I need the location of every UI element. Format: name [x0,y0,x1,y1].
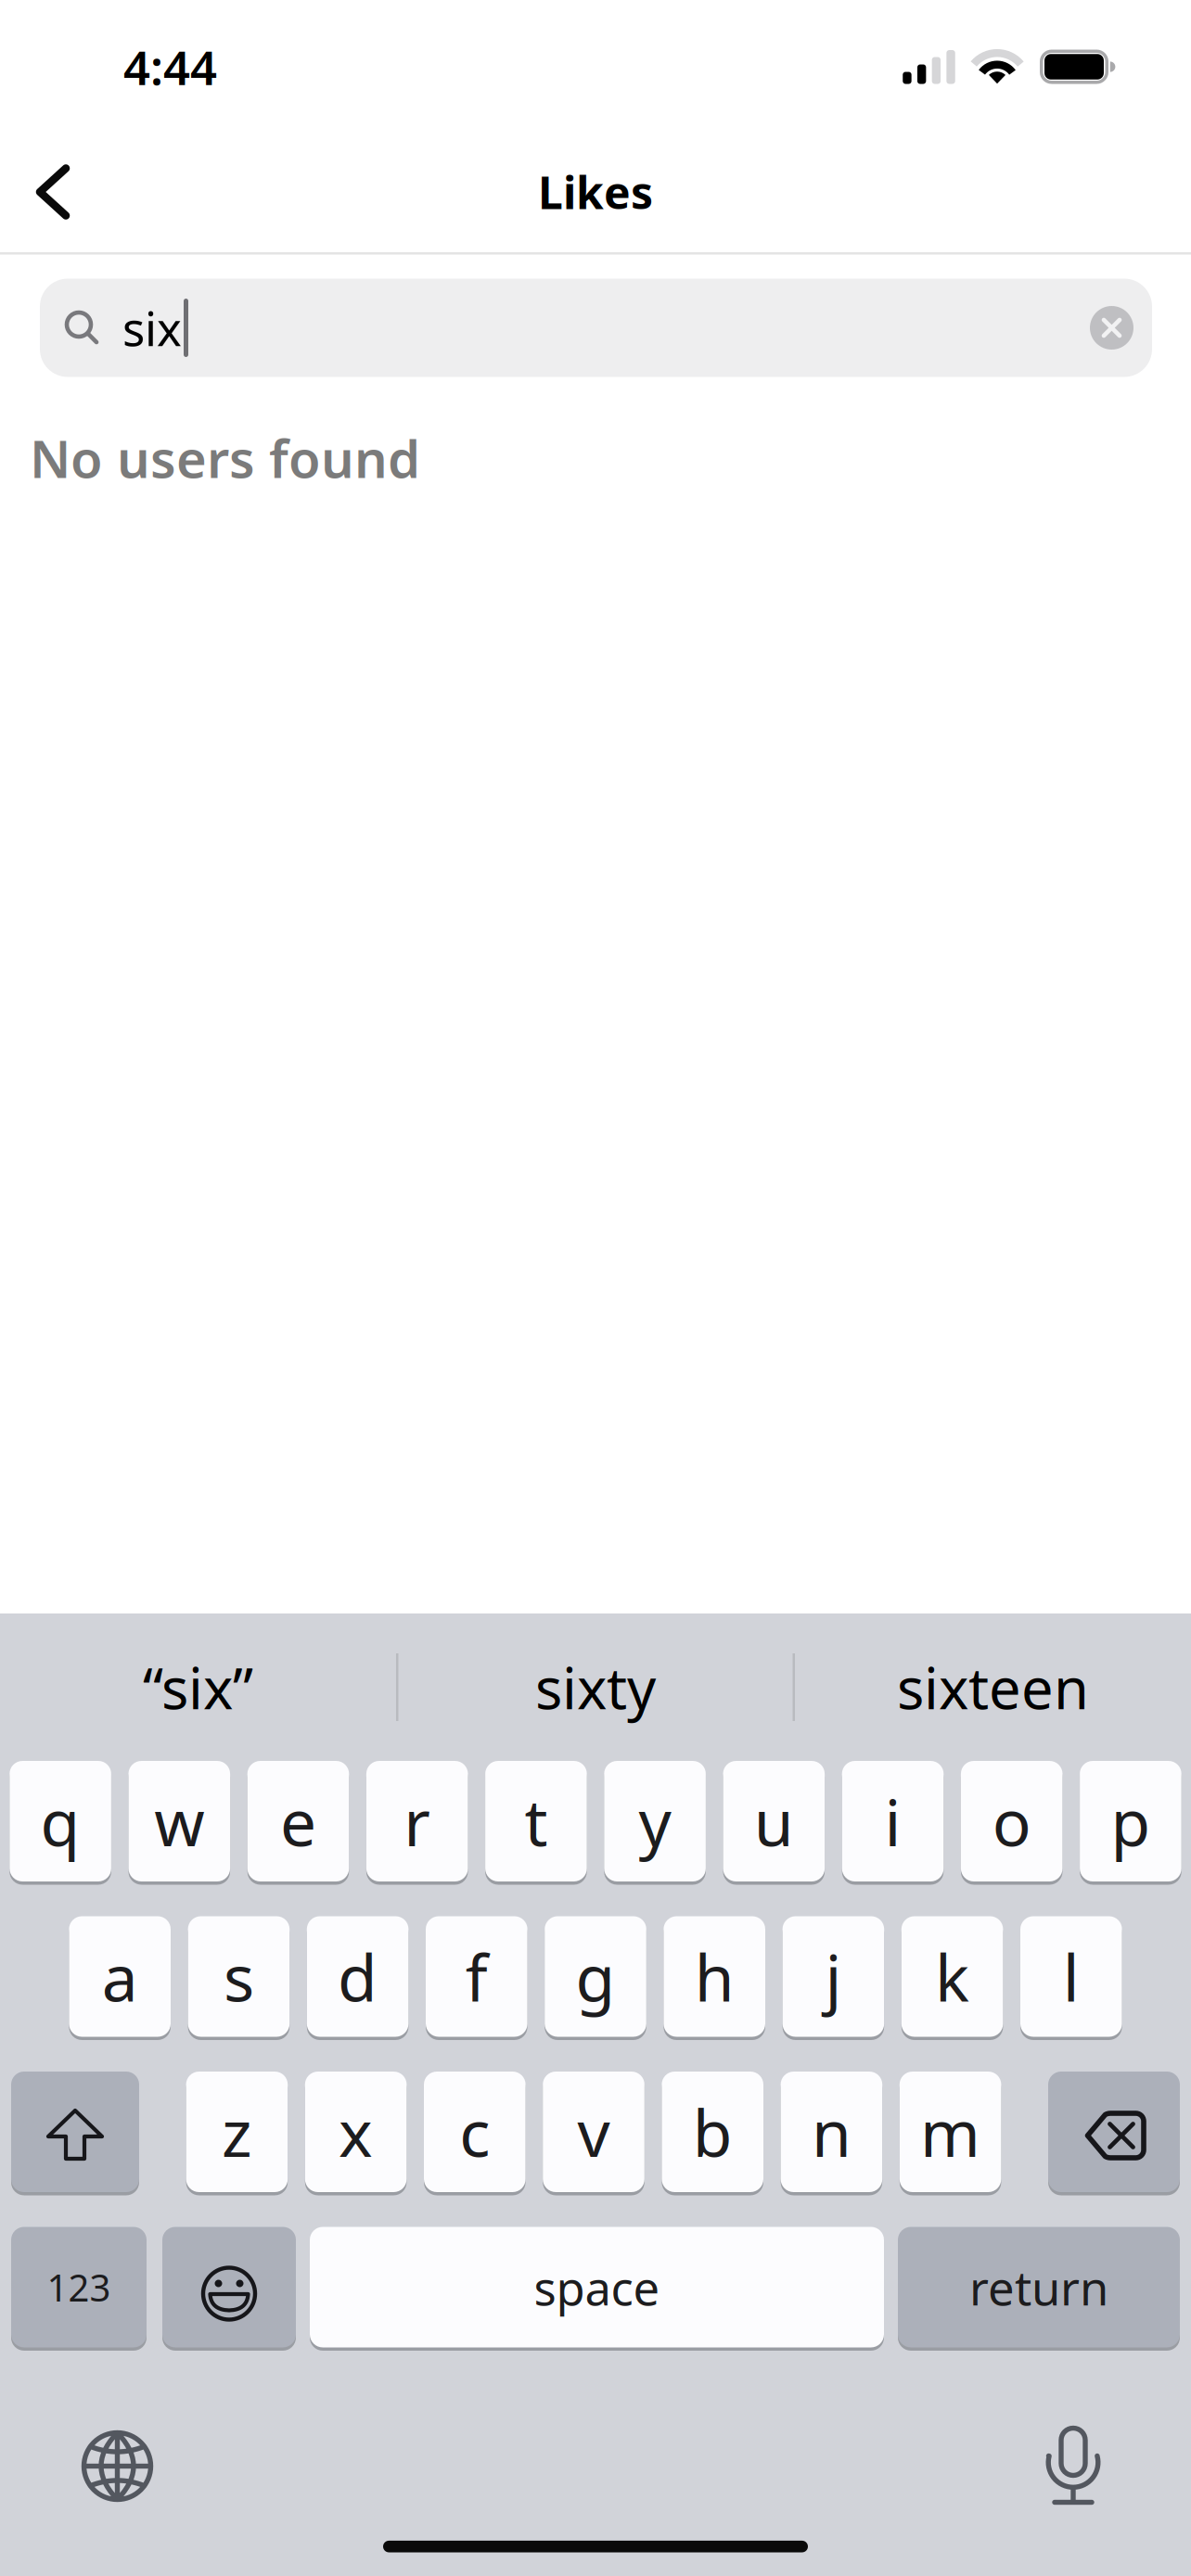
staticText: sixty [535,1649,656,1725]
staticText: 4:44 [123,36,217,98]
button[interactable]: x [305,2072,407,2192]
button[interactable]: six [40,279,1152,377]
staticText: u [754,1779,794,1864]
button[interactable]: n [781,2072,882,2192]
button[interactable]: e [247,1761,349,1881]
staticText: k [935,1934,969,2019]
staticText: x [339,2089,373,2175]
staticText: q [40,1779,80,1864]
button[interactable]: w [128,1761,230,1881]
button[interactable]: space [310,2227,884,2347]
button[interactable]: i [842,1761,944,1881]
staticText: d [338,1934,378,2019]
button[interactable]: g [545,1916,646,2037]
staticText: y [639,1779,671,1864]
staticText: s [223,1934,254,2019]
button[interactable]: l [1020,1916,1122,2037]
button[interactable] [81,2430,154,2502]
button[interactable]: b [662,2072,763,2192]
staticText: r [404,1779,431,1864]
button[interactable]: p [1080,1761,1181,1881]
staticText: g [576,1934,615,2019]
button[interactable]: z [186,2072,288,2192]
staticText: n [812,2089,851,2175]
staticText: z [222,2089,252,2175]
button[interactable] [1048,2427,1098,2505]
staticText: “six” [143,1649,253,1725]
button[interactable]: k [901,1916,1003,2037]
staticText: return [969,2256,1108,2318]
staticText: t [524,1779,548,1864]
button[interactable]: s [188,1916,290,2037]
staticText: No users found [30,423,420,492]
button[interactable]: d [307,1916,409,2037]
staticText: l [1063,1934,1080,2019]
button[interactable]: 123 [11,2227,147,2347]
button[interactable]: f [426,1916,527,2037]
button[interactable]: t [485,1761,587,1881]
staticText: p [1111,1779,1151,1864]
staticText: m [920,2089,981,2175]
staticText: sixteen [897,1649,1089,1725]
button[interactable] [162,2227,296,2347]
staticText: o [992,1779,1031,1864]
staticText: b [693,2089,733,2175]
staticText: e [280,1779,316,1864]
button[interactable]: m [900,2072,1001,2192]
staticText: six [122,297,182,359]
button[interactable]: y [604,1761,706,1881]
button[interactable]: r [366,1761,468,1881]
button[interactable]: a [69,1916,171,2037]
button[interactable] [11,2072,139,2192]
staticText: i [884,1779,901,1864]
button[interactable]: sixty [398,1613,793,1761]
staticText: space [534,2256,660,2318]
button[interactable] [0,165,70,219]
staticText: h [694,1934,734,2019]
staticText: f [465,1934,488,2019]
button[interactable] [1090,306,1133,350]
staticText: c [459,2089,490,2175]
button[interactable]: “six” [0,1613,396,1761]
button[interactable]: q [10,1761,111,1881]
staticText: j [825,1934,842,2019]
button[interactable]: v [543,2072,644,2192]
staticText: 123 [47,2262,111,2312]
button[interactable]: u [723,1761,825,1881]
button[interactable]: c [424,2072,526,2192]
staticText: a [102,1934,138,2019]
button[interactable] [1048,2072,1180,2192]
button[interactable]: sixteen [795,1613,1191,1761]
staticText: v [577,2089,610,2175]
button[interactable]: h [664,1916,765,2037]
button[interactable]: o [961,1761,1063,1881]
staticText: w [154,1779,204,1864]
button[interactable]: j [782,1916,884,2037]
button[interactable]: return [898,2227,1180,2347]
staticText: Likes [538,162,653,221]
